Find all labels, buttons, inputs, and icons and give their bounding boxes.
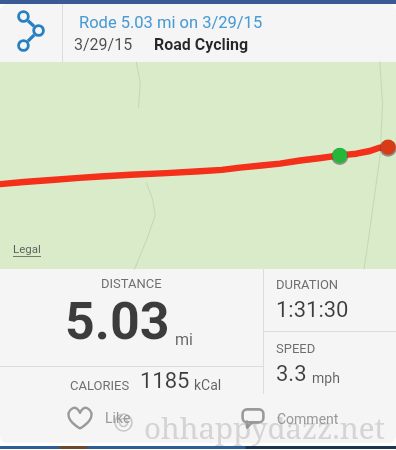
staticText: DISTANCE [101,276,162,291]
button[interactable]: Like [0,394,198,442]
staticText: SPEED [276,341,316,356]
staticText: Rode 5.03 mi on 3/29/15 [79,13,263,32]
staticText: DURATION [276,277,339,292]
staticText: 5.03 [65,291,170,352]
button[interactable]: SPEED [264,332,396,394]
button[interactable]: Activity route [0,4,62,62]
staticText: ohhappydazz.net [144,407,385,447]
button[interactable]: Rode 5.03 mi on 3/29/15 [63,4,396,62]
staticText: Legal [13,242,41,255]
staticText: mi [175,330,193,349]
button[interactable]: Comment [198,394,396,442]
button[interactable]: CALORIES [0,367,263,394]
staticText: CALORIES [70,378,130,393]
staticText: Comment [277,411,339,427]
button[interactable]: DURATION [264,269,396,331]
staticText: mph [312,370,340,386]
staticText: Like [105,410,131,426]
button[interactable]: DISTANCE [0,269,263,366]
staticText: Road Cycling [154,35,249,54]
staticText: 1185 [140,368,190,394]
staticText: 3.3 [276,361,307,387]
staticText: 1:31:30 [276,297,349,323]
staticText: kCal [194,377,222,393]
button[interactable]: Route map [0,62,396,269]
staticText: 3/29/15 [74,35,133,54]
